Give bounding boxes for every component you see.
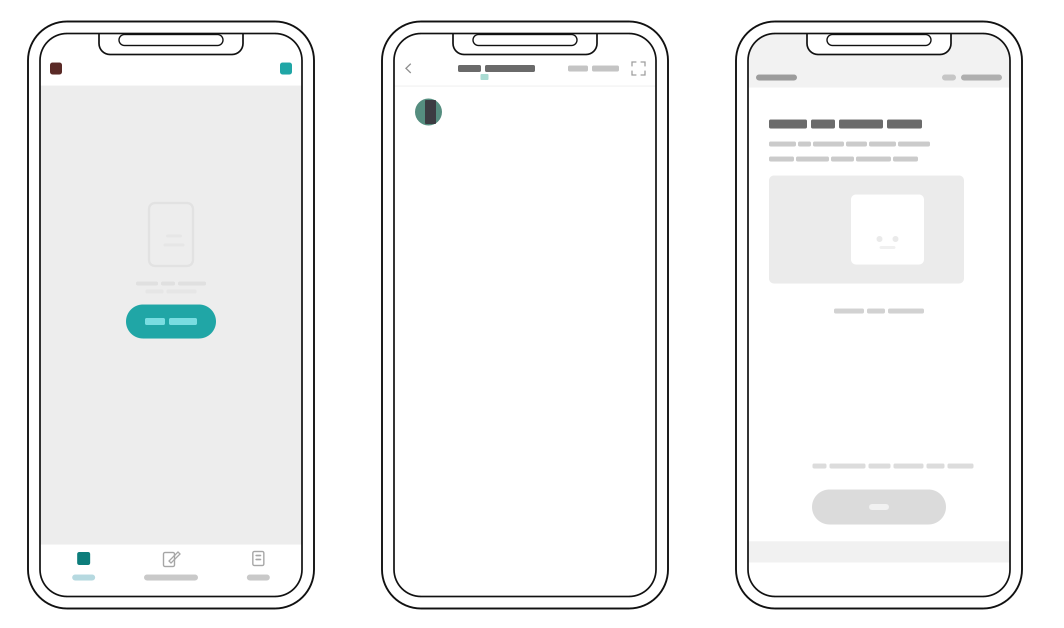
button[interactable]: Profile [46, 58, 66, 78]
button[interactable]: Notifications [276, 58, 296, 78]
button[interactable] [812, 489, 946, 524]
button[interactable]: Account [215, 544, 302, 596]
button[interactable]: Auto scan [568, 56, 619, 80]
button[interactable]: My requests [127, 544, 215, 596]
button[interactable]: Home [40, 544, 127, 596]
button[interactable] [126, 304, 216, 338]
button[interactable]: Carrier [756, 67, 797, 87]
button[interactable]: Back [405, 56, 425, 80]
button[interactable]: Scan QR code [619, 56, 645, 80]
button[interactable]: Status [942, 67, 1002, 87]
